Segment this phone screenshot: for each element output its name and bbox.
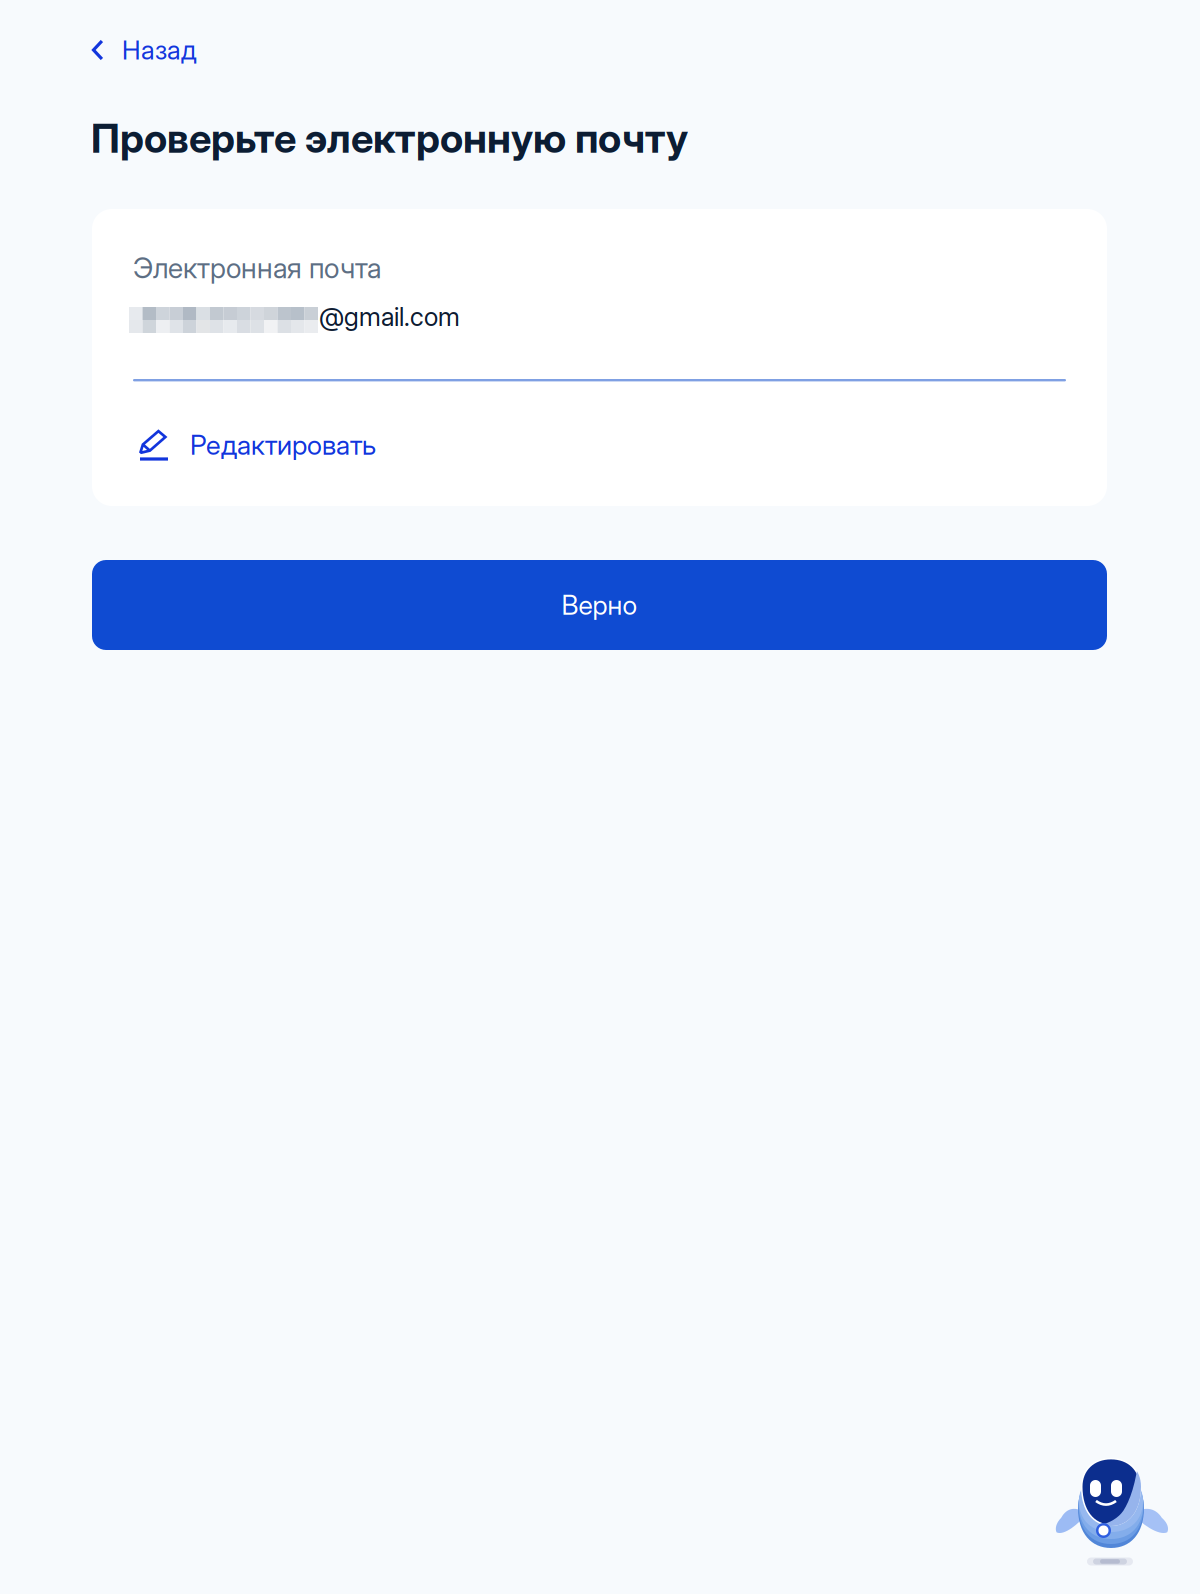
button[interactable]: Редактировать — [130, 417, 430, 473]
button[interactable]: Чат-помощник — [1045, 1447, 1191, 1589]
button[interactable]: Назад — [73, 22, 293, 78]
staticText: @gmail.com — [319, 301, 460, 332]
staticText: Редактировать — [190, 429, 376, 461]
staticText: Назад — [122, 34, 196, 66]
staticText: Верно — [561, 589, 637, 621]
staticText: Электронная почта — [133, 251, 381, 285]
button[interactable]: Верно — [92, 560, 1107, 650]
staticText: Проверьте электронную почту — [91, 114, 688, 162]
